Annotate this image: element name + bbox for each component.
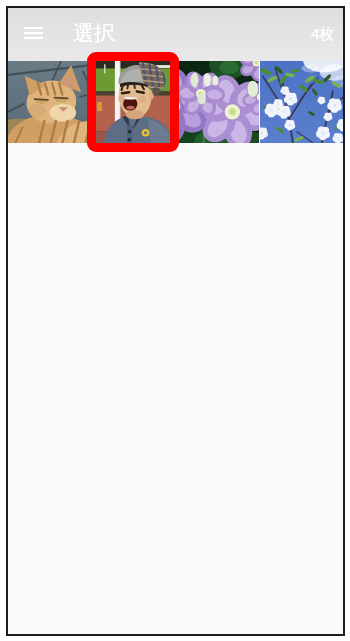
button[interactable]: Selected photo	[87, 52, 179, 152]
button[interactable]: Photo	[176, 61, 259, 143]
button[interactable]: Menu	[16, 8, 51, 61]
staticText: 選択	[73, 20, 115, 46]
button[interactable]: Photo	[8, 61, 91, 143]
staticText: 4枚	[311, 23, 335, 43]
button[interactable]: Photo	[92, 61, 175, 143]
button[interactable]: Photo	[260, 61, 343, 143]
